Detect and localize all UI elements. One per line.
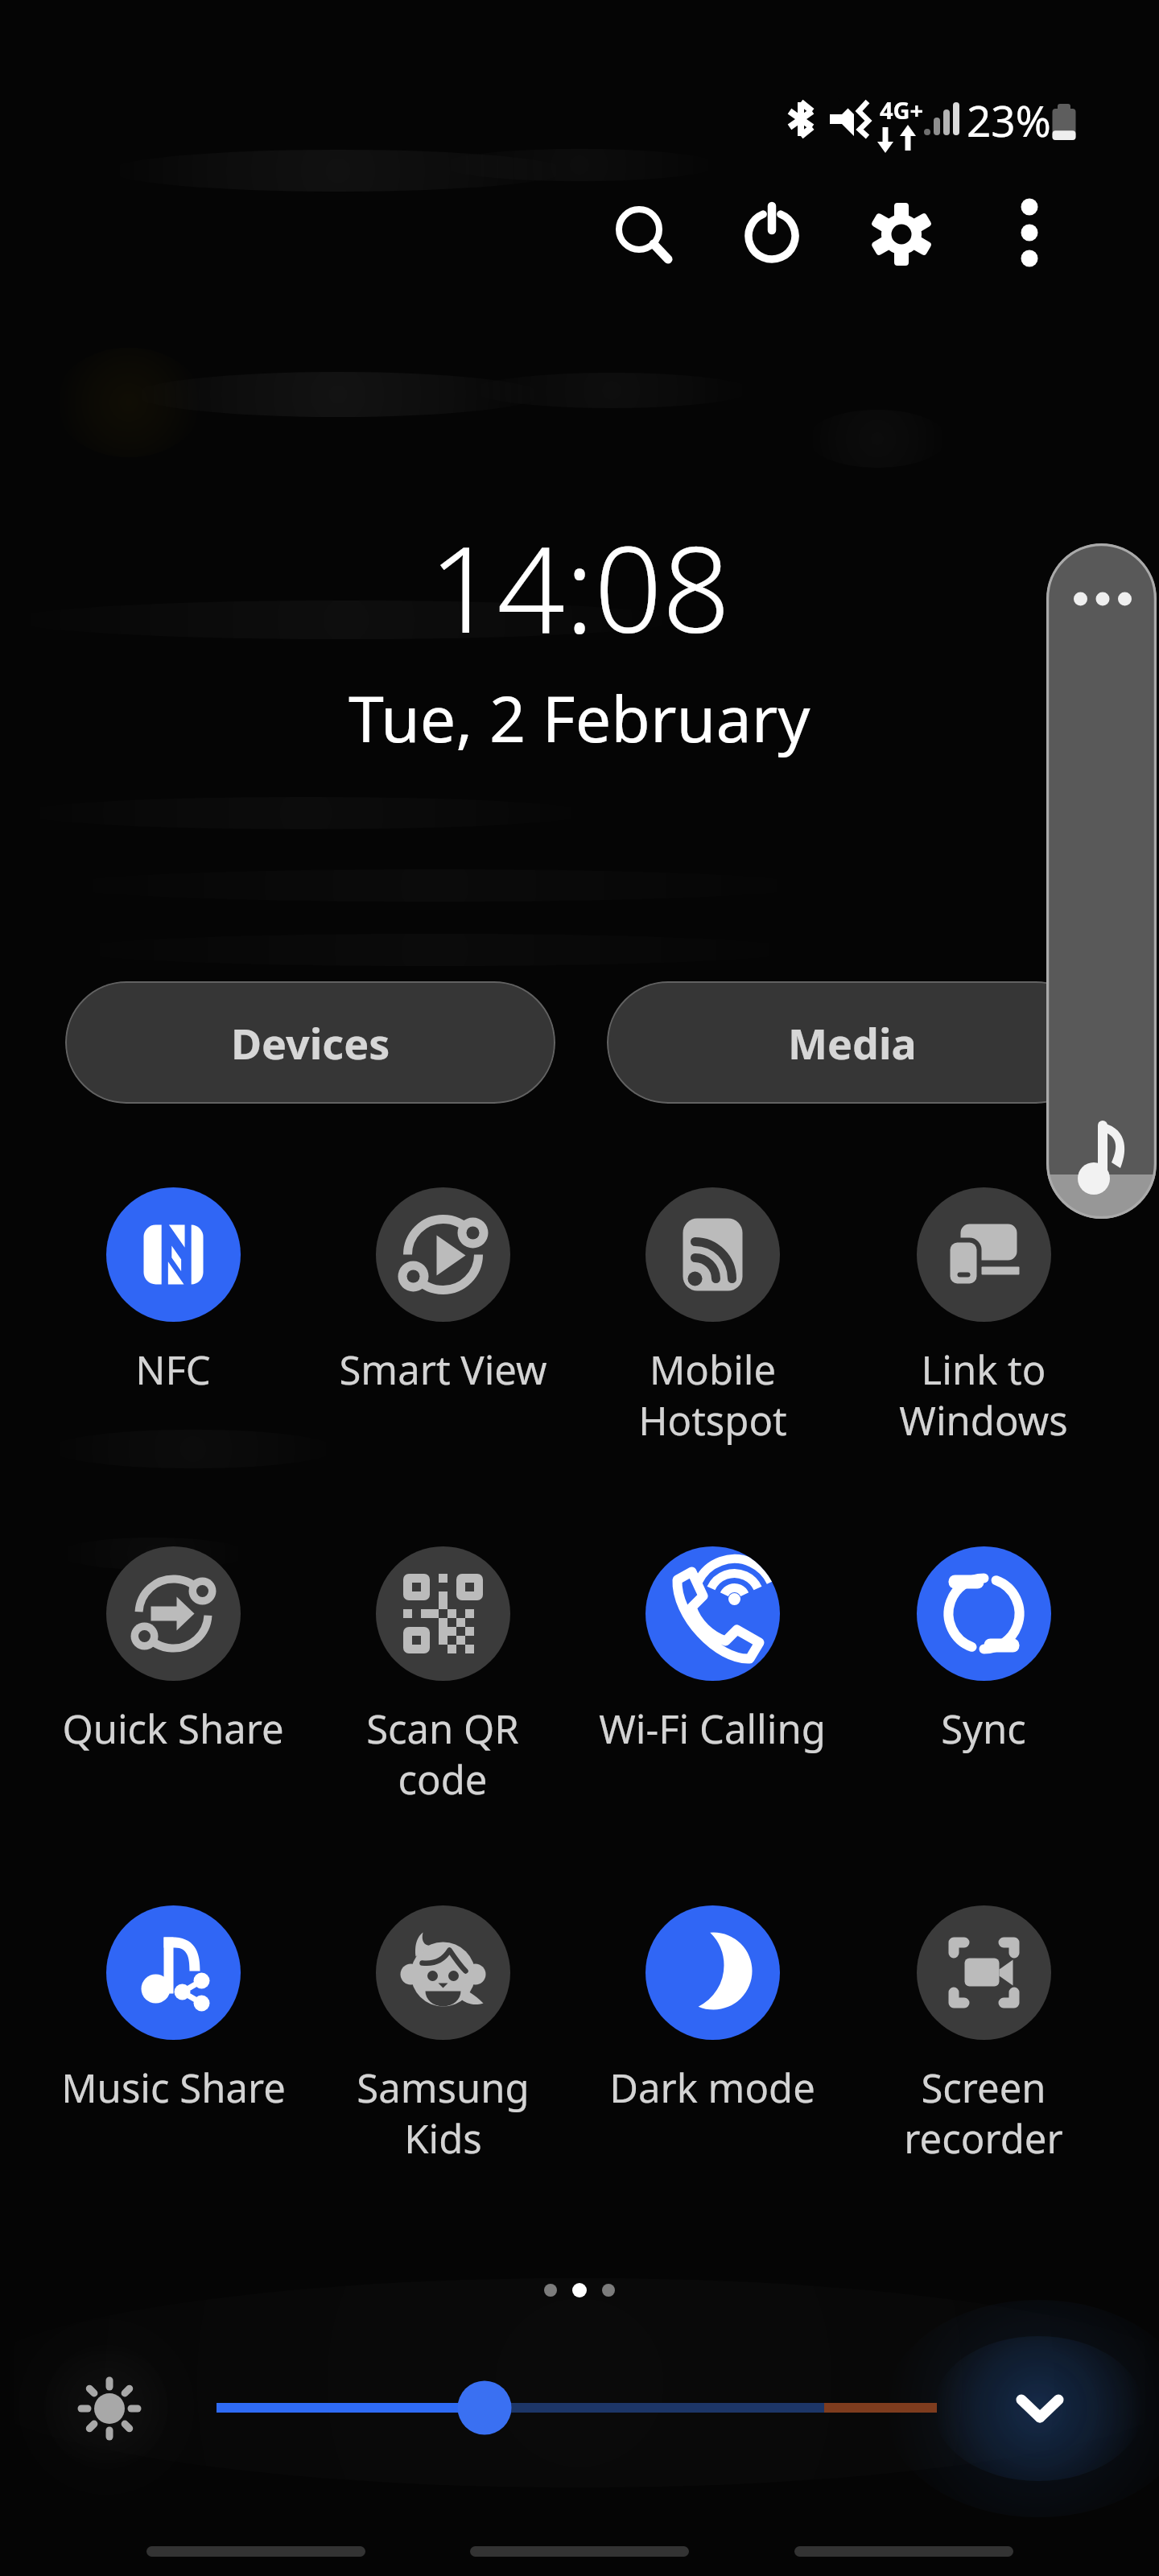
button[interactable]: More options bbox=[980, 183, 1079, 283]
button[interactable]: Link to Windows bbox=[851, 1187, 1116, 1447]
staticText: Smart View bbox=[339, 1343, 547, 1397]
button[interactable]: Smart View bbox=[310, 1187, 575, 1397]
button[interactable]: Expand quick settings bbox=[1002, 2372, 1079, 2449]
button[interactable]: Search bbox=[590, 183, 690, 283]
button[interactable]: Devices bbox=[65, 981, 555, 1104]
button[interactable]: Media bbox=[607, 981, 1097, 1104]
button[interactable]: Settings bbox=[852, 183, 951, 283]
button[interactable]: Scan QR code bbox=[310, 1546, 575, 1806]
button[interactable]: NFC bbox=[40, 1187, 306, 1397]
staticText: Wi-Fi Calling bbox=[599, 1702, 826, 1756]
staticText: Music Share bbox=[61, 2061, 286, 2115]
staticText: Samsung Kids bbox=[357, 2061, 530, 2165]
button[interactable]: Brightness bbox=[65, 2364, 154, 2453]
staticText: Scan QR code bbox=[366, 1702, 519, 1806]
staticText: Link to Windows bbox=[899, 1343, 1068, 1447]
staticText: Devices bbox=[231, 1014, 390, 1071]
staticText: NFC bbox=[135, 1343, 211, 1397]
staticText: 14:08 bbox=[429, 506, 731, 668]
button[interactable]: Media panel handle bbox=[1046, 543, 1157, 1219]
staticText: Tue, 2 February bbox=[349, 675, 810, 762]
staticText: Mobile Hotspot bbox=[638, 1343, 787, 1447]
staticText: Dark mode bbox=[609, 2061, 815, 2115]
staticText: Media bbox=[788, 1014, 917, 1071]
button[interactable]: Mobile Hotspot bbox=[579, 1187, 845, 1447]
staticText: 4G+ bbox=[880, 94, 924, 126]
button[interactable] bbox=[201, 2376, 958, 2440]
button[interactable]: Samsung Kids bbox=[310, 1905, 575, 2165]
button[interactable]: Wi-Fi Calling bbox=[579, 1546, 845, 1756]
staticText: Sync bbox=[941, 1702, 1026, 1756]
button[interactable]: Power bbox=[722, 183, 822, 283]
staticText: 23% bbox=[967, 91, 1051, 149]
staticText: Screen recorder bbox=[904, 2061, 1063, 2165]
staticText: Quick Share bbox=[62, 1702, 284, 1756]
button[interactable]: Screen recorder bbox=[851, 1905, 1116, 2165]
button[interactable]: Quick Share bbox=[40, 1546, 306, 1756]
button[interactable]: Sync bbox=[851, 1546, 1116, 1756]
button[interactable]: Music Share bbox=[40, 1905, 306, 2115]
button[interactable]: Dark mode bbox=[579, 1905, 845, 2115]
